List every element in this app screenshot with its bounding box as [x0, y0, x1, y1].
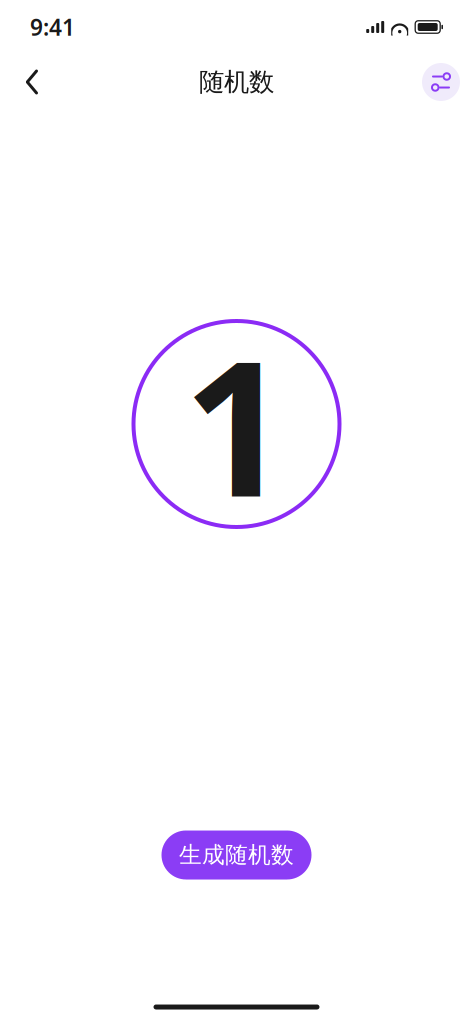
staticText: 9:41 — [30, 12, 75, 42]
button[interactable]: 生成随机数 — [161, 830, 311, 879]
button[interactable]: Back — [10, 60, 54, 104]
button[interactable]: Settings — [419, 60, 463, 104]
staticText: 生成随机数 — [179, 841, 294, 869]
staticText: 随机数 — [199, 66, 274, 97]
staticText: 1 — [183, 300, 290, 548]
